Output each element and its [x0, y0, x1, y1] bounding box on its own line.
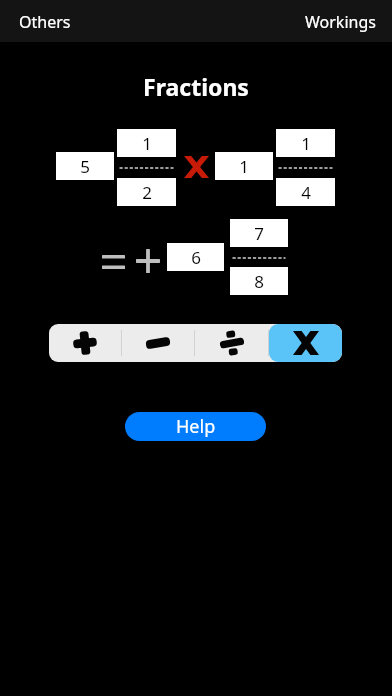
button[interactable]: 8 [230, 267, 288, 295]
button[interactable]: Multiply [269, 324, 342, 362]
button[interactable]: 7 [230, 219, 288, 247]
staticText: 1 [142, 132, 152, 155]
button[interactable]: 1 [276, 129, 335, 157]
staticText: Help [176, 414, 216, 439]
button[interactable]: 2 [117, 178, 176, 206]
button[interactable]: Divide [195, 324, 268, 362]
staticText: 8 [254, 270, 264, 293]
staticText: 5 [80, 155, 90, 178]
button[interactable]: 1 [117, 129, 176, 157]
staticText: Others [19, 11, 71, 33]
staticText: 1 [301, 132, 311, 155]
staticText: 2 [142, 181, 152, 204]
button[interactable]: 4 [276, 178, 335, 206]
staticText: Workings [305, 11, 376, 33]
staticText: Fractions [0, 71, 392, 102]
button[interactable]: Plus [49, 324, 121, 362]
button[interactable]: 5 [56, 152, 114, 180]
button[interactable]: 1 [215, 152, 273, 180]
staticText: 7 [254, 222, 264, 245]
button[interactable]: Help [125, 412, 266, 441]
staticText: 6 [191, 246, 201, 269]
button[interactable]: 6 [167, 243, 224, 271]
staticText: 1 [239, 155, 249, 178]
staticText: 4 [301, 181, 311, 204]
other: Multiply [184, 156, 209, 178]
button[interactable]: Minus [122, 324, 194, 362]
button[interactable]: Others [11, 4, 79, 40]
button[interactable]: Workings [297, 4, 384, 40]
